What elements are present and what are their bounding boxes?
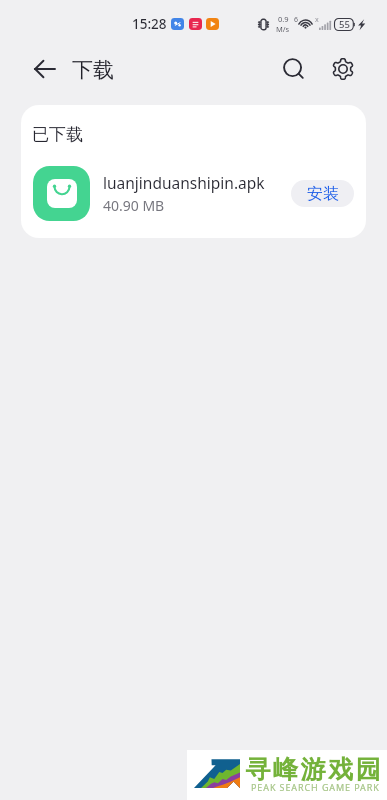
staticText: 下载: [72, 57, 114, 83]
staticText: 6: [294, 15, 299, 25]
staticText: M/s: [276, 24, 290, 34]
button[interactable]: Settings: [325, 51, 361, 87]
staticText: PEAK SEARCH GAME PARK: [251, 781, 380, 793]
button[interactable]: luanjinduanshipin.apk: [21, 158, 366, 228]
staticText: 寻峰游戏园: [244, 754, 382, 785]
staticText: luanjinduanshipin.apk: [103, 172, 265, 193]
button[interactable]: 安装: [291, 180, 354, 207]
button[interactable]: Search: [276, 52, 312, 88]
staticText: x: [315, 15, 319, 25]
staticText: 安装: [307, 184, 339, 204]
staticText: 40.90 MB: [103, 196, 165, 215]
staticText: 已下载: [32, 124, 83, 145]
button[interactable]: Back: [27, 52, 61, 86]
staticText: 0.9: [278, 14, 289, 24]
staticText: 55: [339, 18, 350, 31]
staticText: 15:28: [132, 15, 167, 33]
